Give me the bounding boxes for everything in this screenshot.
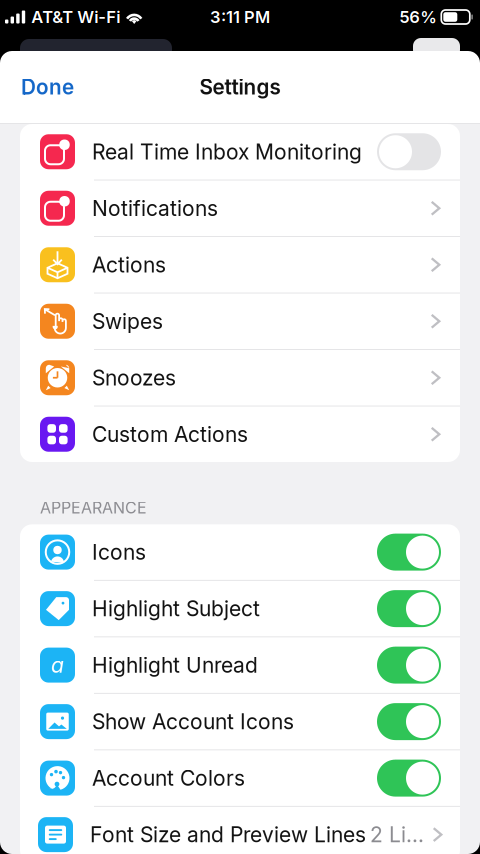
staticText: Real Time Inbox Monitoring <box>92 139 362 164</box>
staticText: 2 Li... <box>370 822 424 847</box>
staticText: a <box>51 652 64 678</box>
staticText: Show Account Icons <box>92 709 294 734</box>
button[interactable]: Show Account Icons <box>20 694 460 749</box>
staticText: Done <box>21 74 74 99</box>
staticText: Actions <box>92 252 166 277</box>
staticText: Settings <box>199 74 280 99</box>
staticText: 56% <box>399 7 437 27</box>
staticText: Custom Actions <box>92 421 248 447</box>
staticText: Icons <box>92 539 146 565</box>
button[interactable]: Highlight Subject <box>20 581 460 636</box>
button[interactable]: Notifications <box>20 180 460 236</box>
staticText: Notifications <box>92 195 218 221</box>
staticText: 3:11 PM <box>210 7 270 27</box>
staticText: AT&T Wi-Fi <box>31 7 120 27</box>
button[interactable]: a <box>20 637 460 693</box>
staticText: Snoozes <box>92 365 176 390</box>
staticText: APPEARANCE <box>40 498 147 517</box>
button[interactable]: Real Time Inbox Monitoring <box>20 124 460 179</box>
button[interactable]: Swipes <box>20 293 460 349</box>
staticText: Swipes <box>92 308 163 334</box>
staticText: Account Colors <box>92 765 245 791</box>
staticText: Font Size and Preview Lines <box>90 822 366 847</box>
button[interactable]: Snoozes <box>20 350 460 405</box>
button[interactable]: Custom Actions <box>20 406 460 462</box>
button[interactable]: Account Colors <box>20 750 460 806</box>
button[interactable]: Actions <box>20 237 460 292</box>
button[interactable]: Font Size and Preview Lines <box>20 807 460 854</box>
staticText: Highlight Subject <box>92 596 260 621</box>
button[interactable]: Icons <box>20 524 460 580</box>
staticText: Highlight Unread <box>92 652 258 678</box>
button[interactable]: Done <box>0 65 88 109</box>
